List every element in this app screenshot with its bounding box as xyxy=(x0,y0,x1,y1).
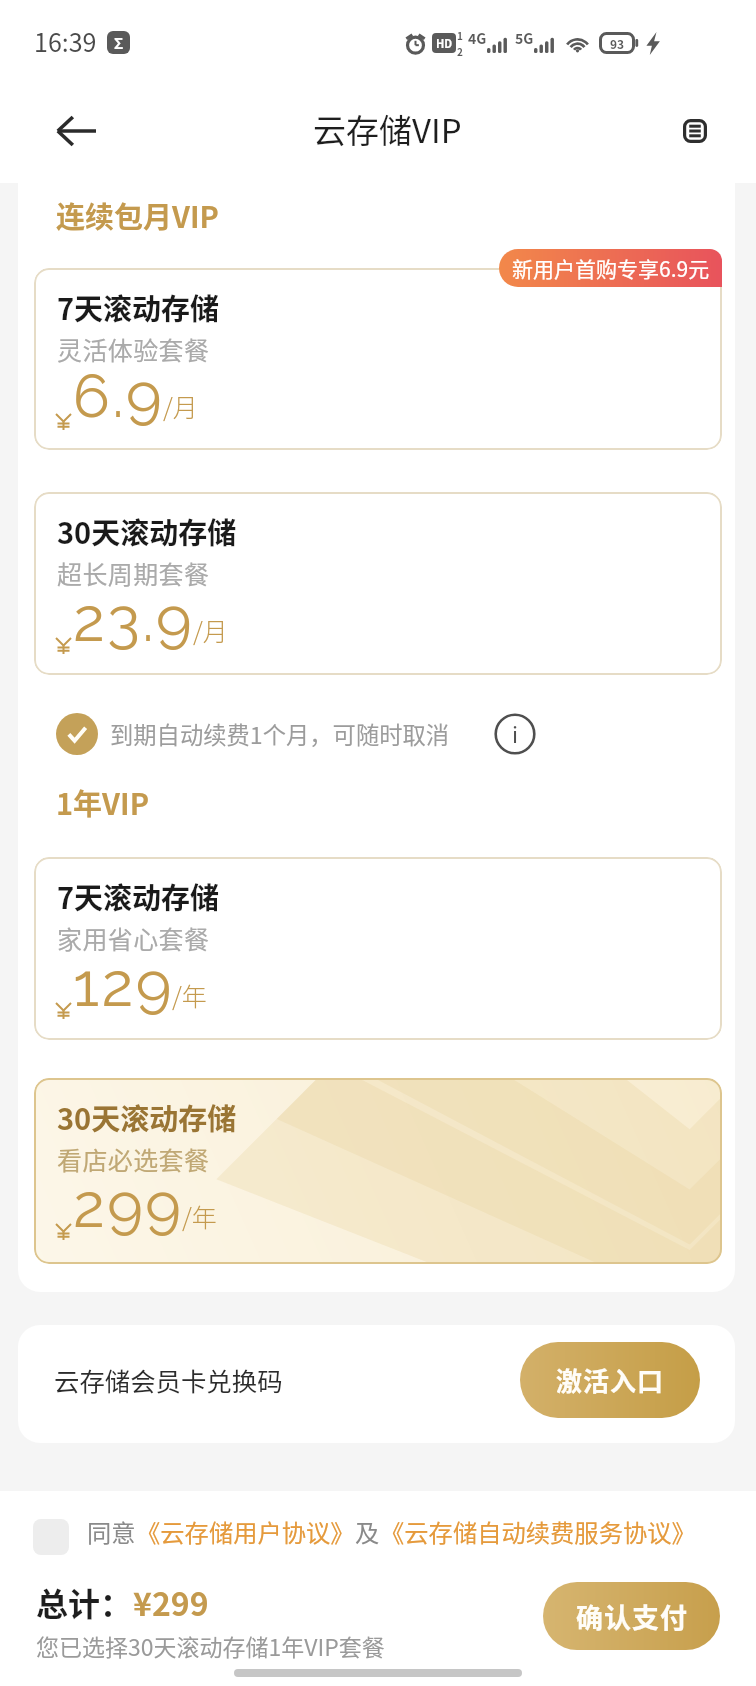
staticText: 看店必选套餐 xyxy=(57,1141,210,1177)
staticText: 7天滚动存储 xyxy=(57,286,220,328)
button[interactable]: Auto renew enabled xyxy=(56,713,98,755)
staticText: 同意 xyxy=(87,1514,136,1549)
staticText: 299 xyxy=(73,1170,184,1242)
staticText: 16:39 xyxy=(34,23,97,59)
staticText: 家用省心套餐 xyxy=(57,920,210,956)
button[interactable]: 7天滚动存储 xyxy=(34,857,722,1040)
staticText: 确认支付 xyxy=(576,1597,688,1636)
staticText: /月 xyxy=(193,612,228,648)
staticText: 新用户首购专享6.9元 xyxy=(512,253,710,283)
staticText: /年 xyxy=(172,977,207,1013)
button[interactable]: 确认支付 xyxy=(543,1582,720,1650)
button[interactable]: Agree to terms xyxy=(33,1519,69,1555)
button[interactable]: 《云存储用户协议》 xyxy=(136,1514,355,1549)
button[interactable]: 30天滚动存储 xyxy=(34,492,722,675)
button[interactable]: More info xyxy=(493,712,537,756)
staticText: 云存储会员卡兑换码 xyxy=(54,1362,283,1399)
staticText: 总计： xyxy=(36,1579,133,1625)
staticText: 连续包月VIP xyxy=(56,194,219,236)
button[interactable]: 《云存储自动续费服务协议》 xyxy=(380,1514,696,1549)
staticText: 5G xyxy=(515,28,534,48)
staticText: ¥299 xyxy=(133,1579,209,1625)
staticText: 30天滚动存储 xyxy=(57,510,237,552)
staticText: 1 xyxy=(457,28,463,42)
staticText: /月 xyxy=(163,388,198,424)
staticText: /年 xyxy=(182,1198,217,1234)
button[interactable]: Menu xyxy=(665,101,725,161)
staticText: HD xyxy=(436,35,453,51)
button[interactable]: 30天滚动存储 xyxy=(34,1078,722,1264)
button[interactable]: 7天滚动存储 xyxy=(34,268,722,450)
staticText: 激活入口 xyxy=(556,1361,665,1399)
staticText: 6.9 xyxy=(73,360,165,432)
staticText: 23.9 xyxy=(73,584,195,656)
staticText: 云存储VIP xyxy=(313,105,462,153)
button[interactable]: 激活入口 xyxy=(520,1342,700,1418)
staticText: 您已选择30天滚动存储1年VIP套餐 xyxy=(36,1629,385,1662)
staticText: 30天滚动存储 xyxy=(57,1096,237,1138)
staticText: 及 xyxy=(355,1514,380,1549)
staticText: 1年VIP xyxy=(56,781,149,823)
staticText: 2 xyxy=(457,44,463,58)
staticText: 129 xyxy=(73,949,174,1021)
staticText: 到期自动续费1个月，可随时取消 xyxy=(110,717,450,751)
staticText: i xyxy=(512,717,519,749)
staticText: Σ xyxy=(114,32,124,54)
button[interactable]: Back xyxy=(42,97,110,165)
staticText: 7天滚动存储 xyxy=(57,875,220,917)
staticText: 超长周期套餐 xyxy=(57,555,210,591)
staticText: 4G xyxy=(468,28,487,48)
staticText: 灵活体验套餐 xyxy=(57,331,210,367)
staticText: 93 xyxy=(610,35,625,52)
